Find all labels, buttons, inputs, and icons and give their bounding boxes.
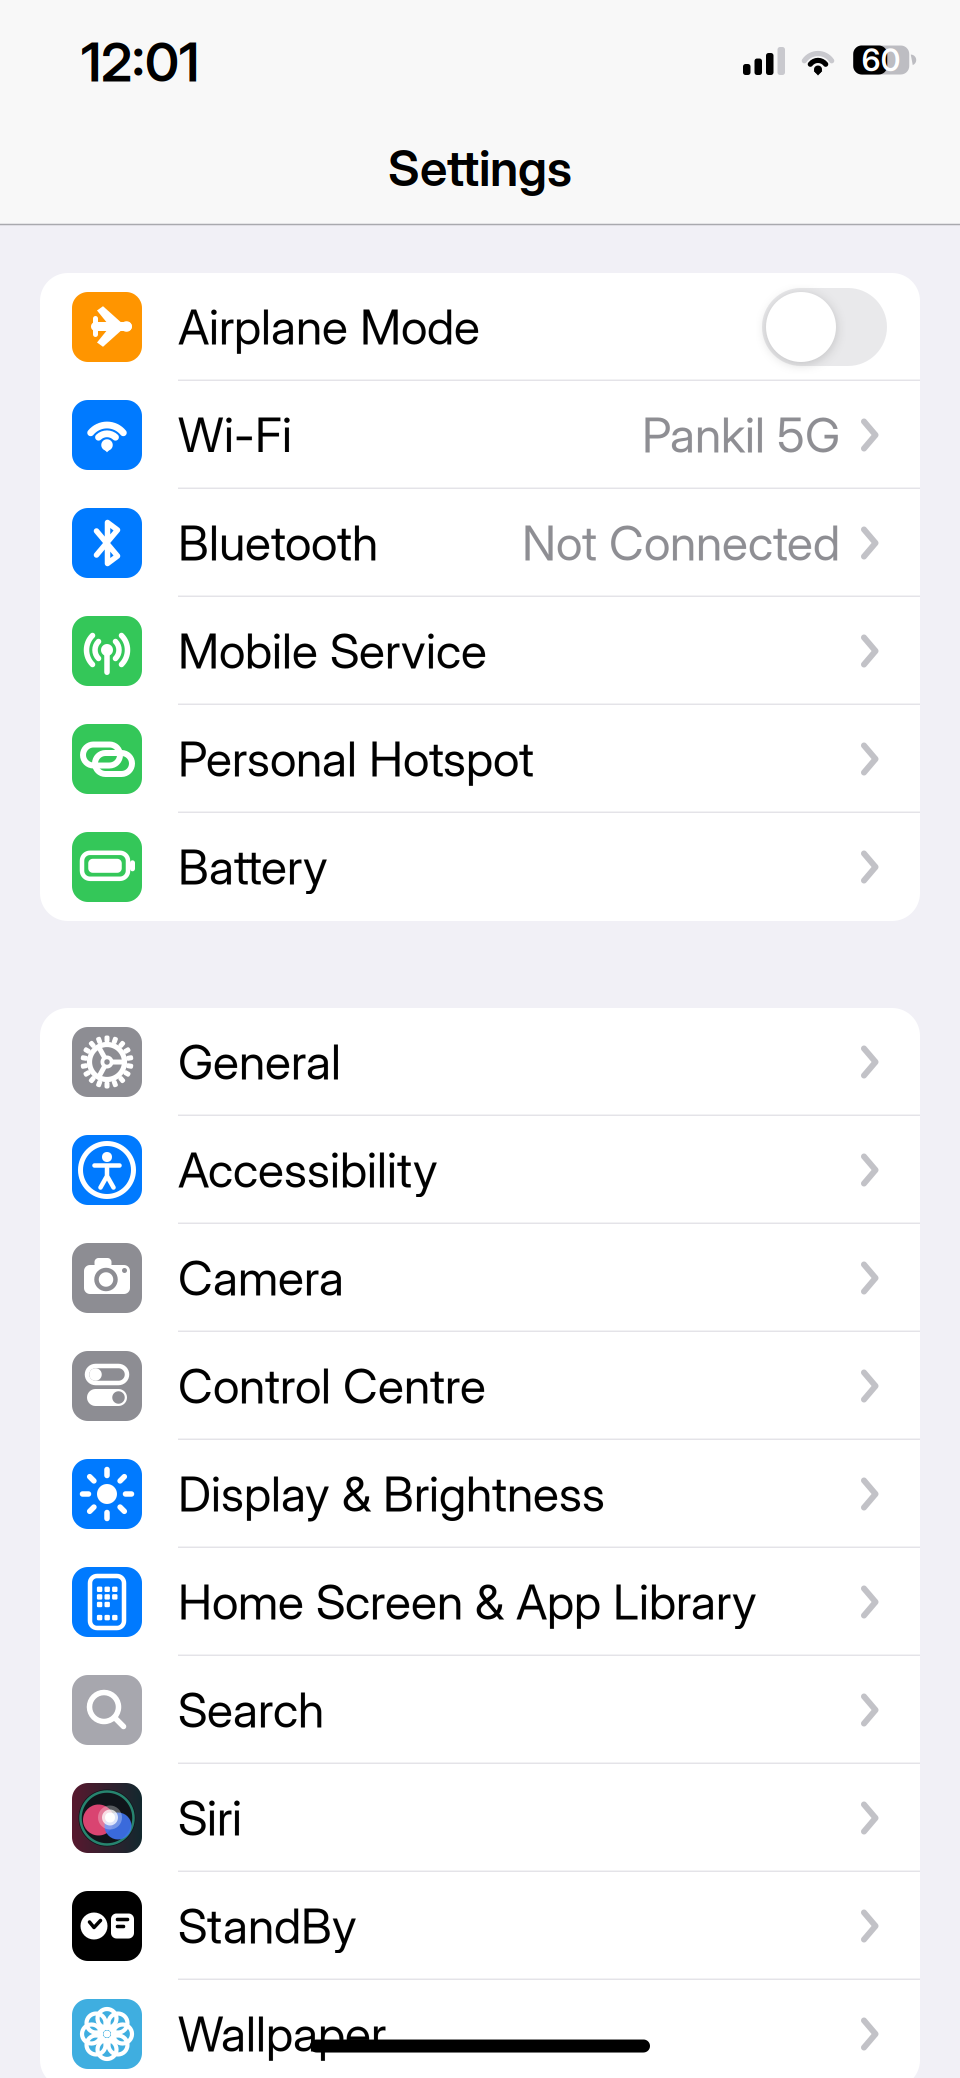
staticText: Search (178, 1682, 324, 1738)
staticText: Battery (178, 839, 328, 895)
button[interactable]: Airplane Mode (762, 288, 887, 366)
button[interactable]: Display & Brightness (40, 1440, 920, 1548)
staticText: Accessibility (178, 1142, 438, 1198)
button[interactable]: Search (40, 1656, 920, 1764)
button[interactable]: Siri (40, 1764, 920, 1872)
staticText: 12:01 (81, 30, 199, 93)
staticText: Siri (178, 1790, 242, 1846)
staticText: Wi-Fi (178, 407, 292, 463)
staticText: Display & Brightness (178, 1466, 605, 1522)
button[interactable]: Battery (40, 813, 920, 921)
button[interactable]: Wallpaper (40, 1980, 920, 2078)
staticText: Airplane Mode (178, 299, 480, 355)
staticText: Bluetooth (178, 515, 378, 571)
button[interactable]: General (40, 1008, 920, 1116)
staticText: General (178, 1034, 341, 1090)
button[interactable]: Camera (40, 1224, 920, 1332)
button[interactable]: Accessibility (40, 1116, 920, 1224)
staticText: Personal Hotspot (178, 731, 534, 787)
button[interactable]: StandBy (40, 1872, 920, 1980)
staticText: Camera (178, 1250, 344, 1306)
staticText: Pankil 5G (642, 407, 840, 463)
button[interactable]: Control Centre (40, 1332, 920, 1440)
staticText: Not Connected (522, 515, 840, 571)
staticText: 60 (862, 42, 901, 78)
button[interactable]: Home Screen & App Library (40, 1548, 920, 1656)
button[interactable]: Wi-Fi (40, 381, 920, 489)
staticText: Home Screen & App Library (178, 1574, 757, 1630)
button[interactable]: Bluetooth (40, 489, 920, 597)
button[interactable]: Personal Hotspot (40, 705, 920, 813)
staticText: Wallpaper (178, 2006, 386, 2062)
button[interactable]: Mobile Service (40, 597, 920, 705)
staticText: Control Centre (178, 1358, 486, 1414)
staticText: Mobile Service (178, 623, 487, 679)
staticText: Settings (388, 139, 572, 197)
staticText: StandBy (178, 1898, 357, 1954)
